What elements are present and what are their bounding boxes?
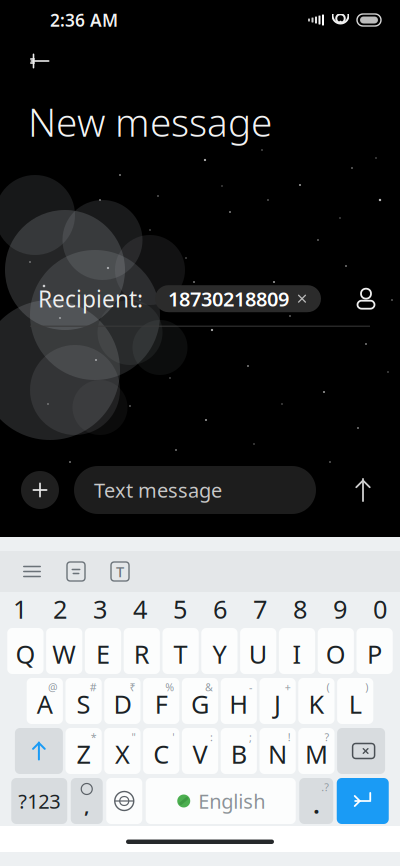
staticText: , — [84, 795, 89, 818]
staticText: 8 — [293, 592, 307, 626]
staticText: Recipient: — [38, 284, 143, 314]
button[interactable]: Menu — [12, 551, 52, 591]
staticText: X — [115, 737, 130, 771]
staticText: English — [198, 788, 265, 814]
button[interactable]: 2 — [40, 593, 80, 625]
button[interactable]: 4 — [120, 593, 160, 625]
button[interactable]: 5 — [160, 593, 200, 625]
staticText: 9 — [333, 592, 347, 626]
staticText: 4 — [133, 592, 147, 626]
button[interactable]: Choose contact — [344, 279, 388, 319]
button[interactable]: 9 — [320, 593, 360, 625]
button[interactable]: Text formatting — [100, 551, 140, 591]
staticText: G — [191, 687, 209, 721]
button[interactable]: V — [182, 728, 218, 774]
staticText: Z — [77, 737, 91, 771]
button[interactable]: Send — [341, 468, 385, 512]
button[interactable]: B — [221, 728, 257, 774]
button[interactable]: Enter — [337, 778, 389, 824]
button[interactable]: English — [146, 778, 296, 824]
button[interactable]: 3 — [80, 593, 120, 625]
button[interactable]: Period — [299, 778, 333, 824]
staticText: V — [192, 737, 207, 771]
staticText: " — [131, 730, 135, 744]
button[interactable]: 0 — [360, 593, 400, 625]
button[interactable]: 18730218809 — [155, 285, 321, 312]
button[interactable]: Add attachment — [18, 468, 62, 512]
staticText: W — [52, 637, 76, 671]
button[interactable]: Backspace — [337, 728, 385, 774]
button[interactable]: 1 — [0, 593, 40, 625]
staticText: H — [229, 687, 248, 721]
button[interactable]: X — [104, 728, 140, 774]
staticText: M — [305, 737, 328, 771]
button[interactable]: Text message — [74, 466, 316, 514]
staticText: ( — [326, 680, 329, 694]
staticText: 7 — [253, 592, 267, 626]
button[interactable]: Clipboard — [56, 551, 96, 591]
staticText: C — [153, 737, 169, 771]
button[interactable]: H — [221, 678, 257, 724]
staticText: B — [231, 737, 247, 771]
button[interactable]: O — [318, 628, 354, 674]
button[interactable]: U — [240, 628, 276, 674]
button[interactable]: C — [143, 728, 179, 774]
button[interactable]: Shift — [15, 728, 63, 774]
staticText: 3 — [93, 592, 107, 626]
button[interactable]: 8 — [280, 593, 320, 625]
staticText: 0 — [373, 592, 387, 626]
button[interactable]: ?123 — [11, 778, 67, 824]
button[interactable]: Q — [7, 628, 43, 674]
staticText: F — [155, 687, 168, 721]
staticText: D — [113, 687, 131, 721]
staticText: 1 — [13, 592, 27, 626]
button[interactable]: E — [85, 628, 121, 674]
button[interactable]: Z — [65, 728, 102, 774]
staticText: Q — [15, 637, 35, 671]
button[interactable]: Emoji and comma — [71, 778, 103, 824]
staticText: J — [274, 687, 281, 721]
staticText: R — [134, 637, 150, 671]
button[interactable]: W — [46, 628, 82, 674]
staticText: 2:36 AM — [50, 8, 118, 31]
button[interactable]: K — [298, 678, 334, 724]
staticText: * — [91, 730, 97, 744]
staticText: - — [249, 680, 252, 694]
button[interactable]: Back — [18, 41, 62, 81]
button[interactable]: A — [27, 678, 63, 724]
button[interactable]: Switch language — [106, 778, 142, 824]
staticText: S — [77, 687, 91, 721]
button[interactable]: D — [104, 678, 140, 724]
staticText: ) — [365, 680, 368, 694]
button[interactable]: 6 — [200, 593, 240, 625]
button[interactable]: Y — [201, 628, 237, 674]
button[interactable]: S — [65, 678, 102, 724]
staticText: 2 — [53, 592, 67, 626]
button[interactable]: L — [337, 678, 373, 724]
staticText: 18730218809 — [168, 285, 289, 312]
staticText: # — [90, 680, 97, 694]
button[interactable]: M — [298, 728, 334, 774]
button[interactable]: J — [259, 678, 296, 724]
staticText: Y — [212, 637, 226, 671]
button[interactable]: G — [182, 678, 218, 724]
button[interactable]: P — [356, 628, 393, 674]
button[interactable]: I — [279, 628, 315, 674]
button[interactable]: T — [162, 628, 199, 674]
staticText: Text message — [94, 477, 222, 503]
staticText: ₹ — [129, 680, 135, 694]
button[interactable]: R — [124, 628, 160, 674]
staticText: @ — [48, 680, 58, 694]
staticText: ; — [249, 730, 252, 744]
button[interactable]: N — [259, 728, 296, 774]
button[interactable]: 7 — [240, 593, 280, 625]
button[interactable]: F — [143, 678, 179, 724]
staticText: + — [285, 680, 291, 694]
staticText: ?123 — [18, 788, 60, 814]
staticText: A — [37, 687, 53, 721]
staticText: New message — [28, 96, 272, 147]
staticText: % — [165, 680, 174, 694]
staticText: P — [367, 637, 382, 671]
staticText: K — [308, 687, 324, 721]
staticText: 5 — [173, 592, 187, 626]
